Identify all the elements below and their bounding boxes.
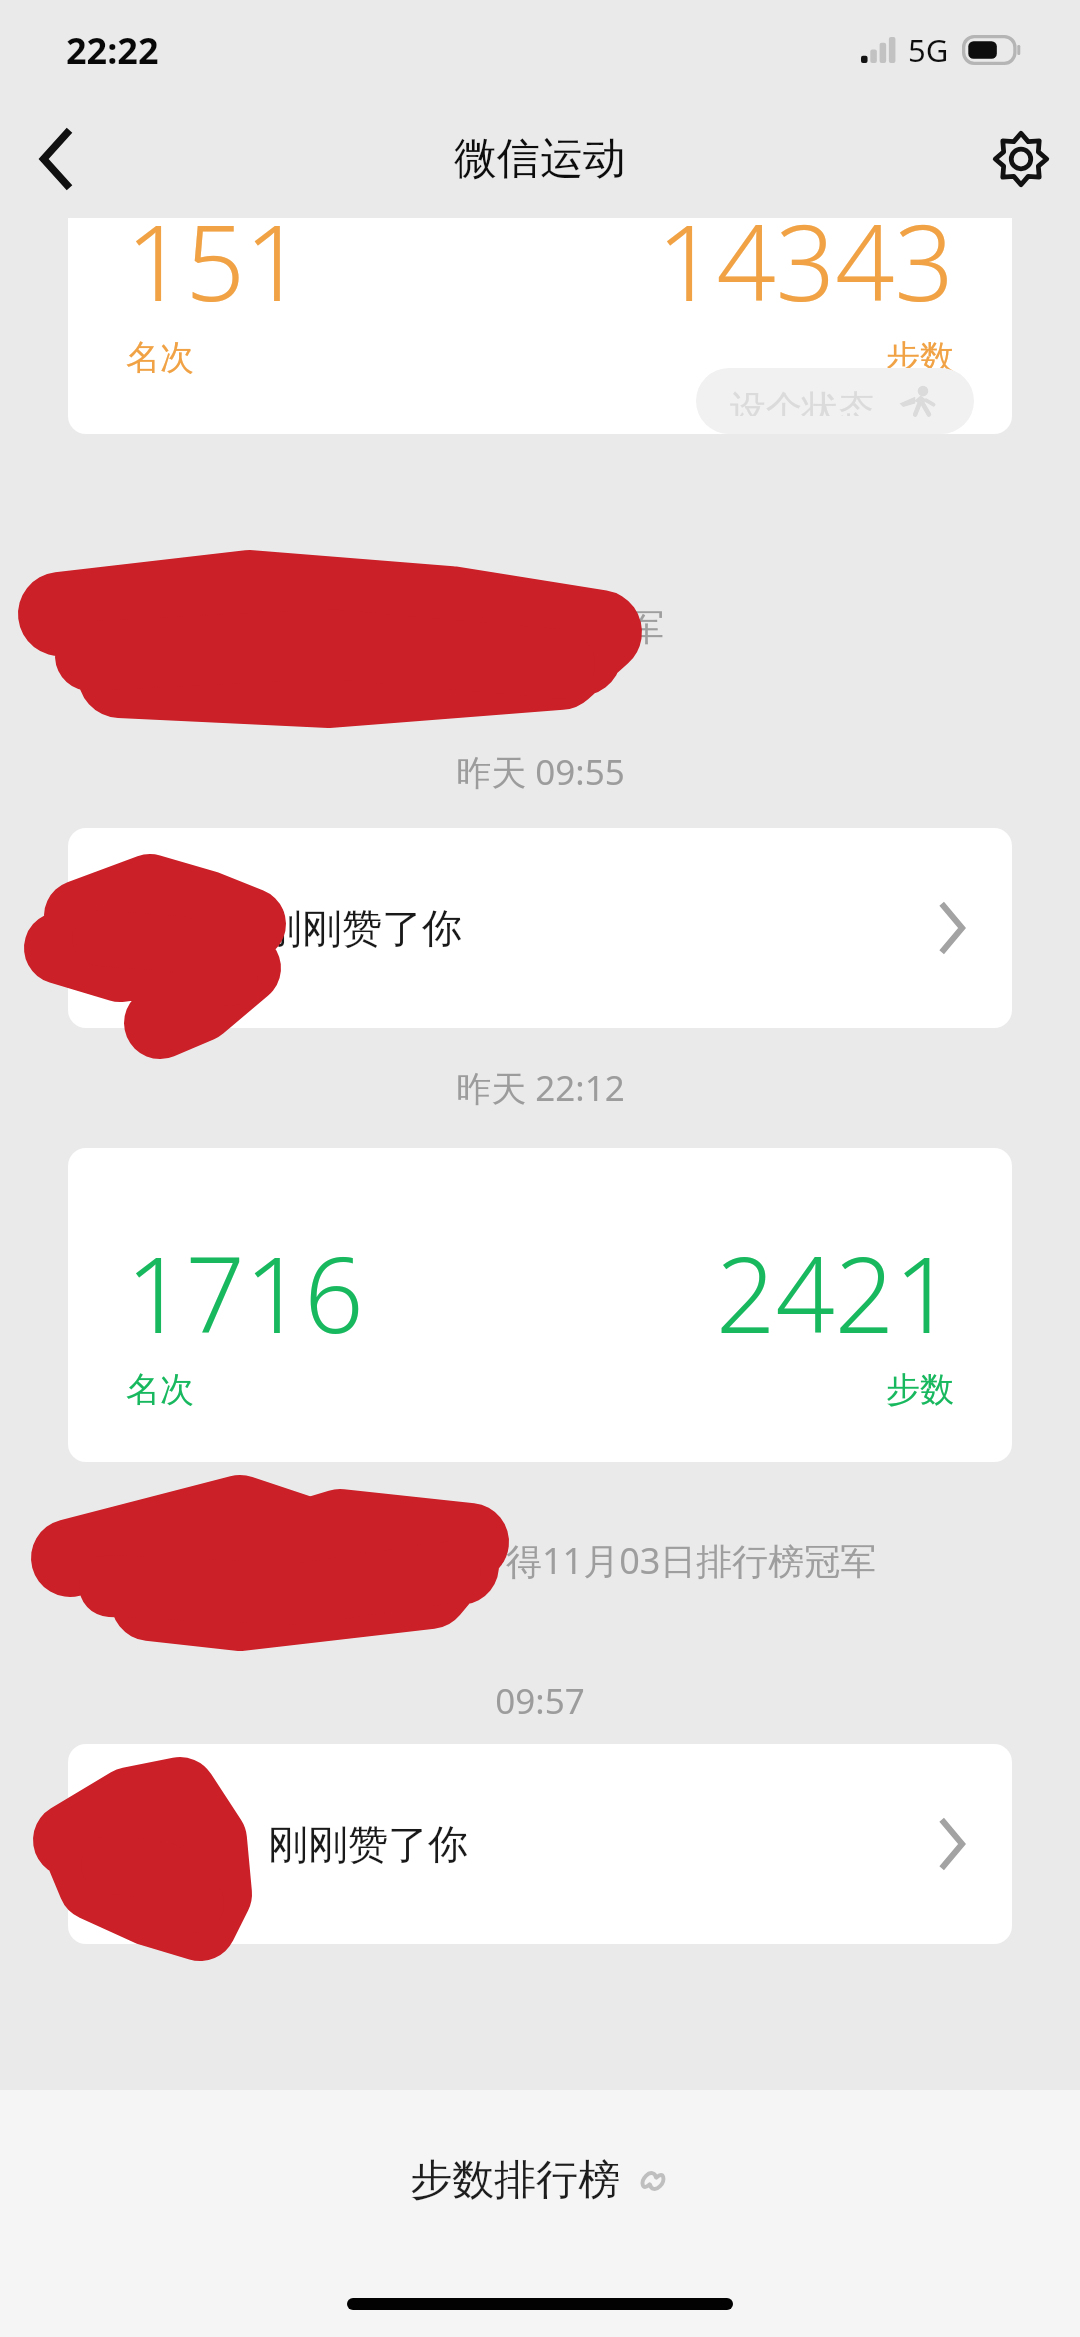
staticText: 2421: [716, 1222, 954, 1364]
staticText: 5G: [908, 29, 949, 71]
button[interactable]: 设个状态: [696, 368, 974, 434]
button[interactable]: 步数排行榜: [370, 2128, 710, 2233]
staticText: 名次: [126, 1368, 194, 1411]
staticText: 步数排行榜: [410, 2154, 620, 2207]
staticText: 09:57: [495, 1677, 585, 1725]
staticText: 昨天 09:55: [456, 748, 625, 796]
staticText: 设个状态: [730, 386, 874, 416]
button[interactable]: 刚刚赞了你: [68, 828, 1012, 1028]
staticText: 1716: [126, 1222, 364, 1364]
staticText: 步数: [886, 1368, 954, 1411]
staticText: 微信运动: [454, 132, 626, 186]
staticText: 刚刚赞了你: [262, 903, 462, 953]
button[interactable]: Back: [0, 104, 110, 214]
staticText: 14343: [657, 218, 954, 332]
staticText: 步数: [886, 336, 954, 379]
button[interactable]: 151: [68, 218, 1012, 434]
staticText: 夺得11月03日排行榜冠军: [470, 1536, 877, 1585]
staticText: 夺得11月03日排行榜冠军: [258, 602, 665, 651]
staticText: 名次: [126, 336, 194, 379]
button[interactable]: Settings: [962, 100, 1080, 218]
button[interactable]: 刚刚赞了你: [68, 1744, 1012, 1944]
staticText: 昨天 22:12: [456, 1064, 625, 1112]
staticText: 刚刚赞了你: [268, 1819, 468, 1869]
staticText: 22:22: [66, 26, 159, 75]
staticText: 151: [126, 218, 305, 332]
button[interactable]: 1716: [68, 1148, 1012, 1462]
